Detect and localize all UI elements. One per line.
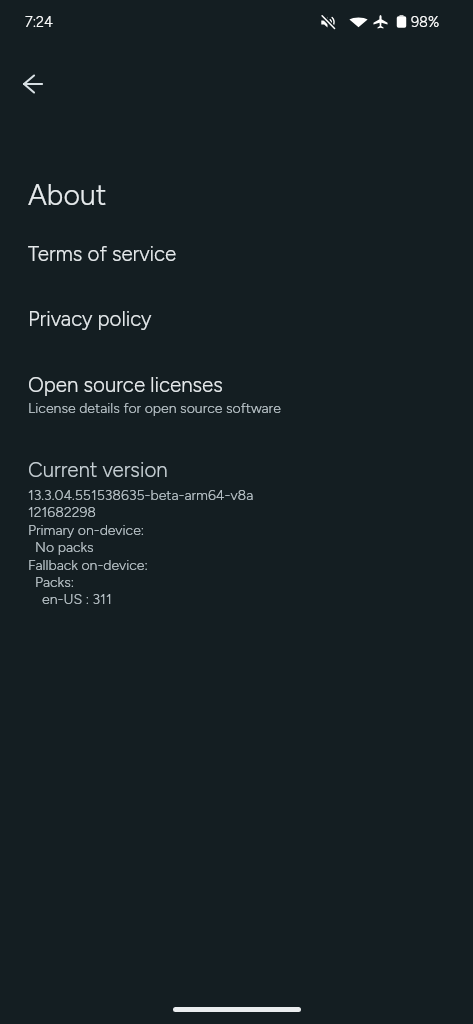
staticText: Terms of service [28, 242, 177, 267]
button[interactable]: Privacy policy [28, 307, 445, 332]
staticText: 98% [411, 13, 440, 30]
button[interactable]: Terms of service [28, 242, 445, 267]
staticText: License details for open source software [28, 400, 281, 417]
staticText: Packs: [28, 574, 75, 591]
staticText: Fallback on-device: [28, 557, 148, 574]
button[interactable]: Open source licenses [28, 373, 445, 417]
staticText: 13.3.04.551538635-beta-arm64-v8a [28, 487, 254, 504]
staticText: No packs [28, 539, 94, 556]
staticText: Privacy policy [28, 307, 152, 332]
staticText: Primary on-device: [28, 522, 145, 539]
staticText: en-US : 311 [28, 591, 112, 608]
staticText: 121682298 [28, 504, 96, 521]
staticText: Open source licenses [28, 373, 223, 398]
staticText: About [28, 178, 107, 212]
button[interactable]: Navigate up [9, 60, 57, 108]
staticText: Current version [28, 458, 168, 483]
staticText: 7:24 [25, 13, 53, 30]
